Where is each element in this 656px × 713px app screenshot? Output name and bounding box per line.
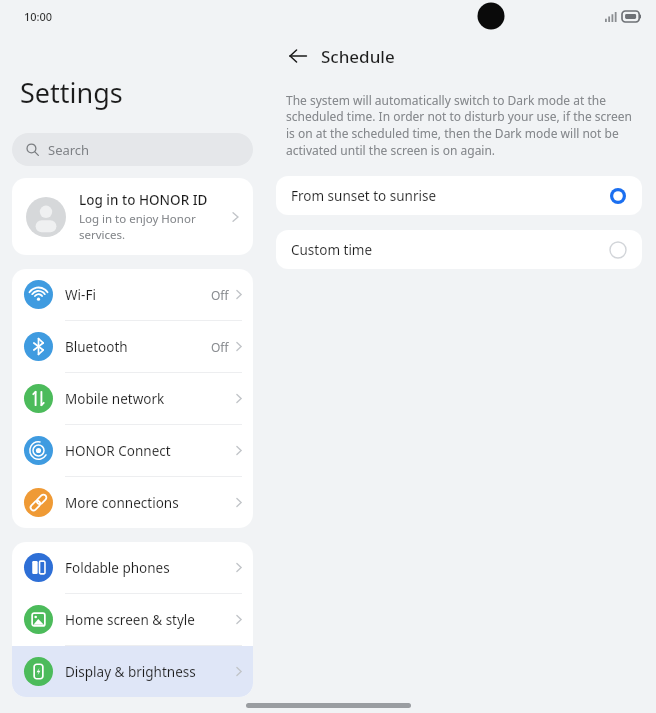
button[interactable]: Bluetooth [12, 321, 253, 372]
staticText: Custom time [291, 241, 609, 259]
button[interactable]: Back [283, 41, 313, 71]
staticText: Settings [20, 74, 123, 111]
staticText: HONOR Connect [65, 442, 236, 460]
button[interactable]: Log in to HONOR ID [12, 178, 253, 255]
staticText: Display & brightness [65, 663, 236, 681]
staticText: Off [211, 339, 229, 355]
staticText: The system will automatically switch to … [286, 92, 632, 158]
staticText: Bluetooth [65, 338, 211, 356]
staticText: Log in to enjoy Honor services. [79, 211, 196, 242]
staticText: Log in to HONOR ID [79, 191, 208, 209]
button[interactable]: From sunset to sunrise [276, 176, 642, 215]
button[interactable]: Display & brightness [12, 646, 253, 697]
staticText: Mobile network [65, 390, 236, 408]
staticText: Wi-Fi [65, 286, 211, 304]
staticText: From sunset to sunrise [291, 187, 609, 205]
button[interactable]: Search [12, 133, 253, 166]
button[interactable]: Mobile network [12, 373, 253, 424]
staticText: Foldable phones [65, 559, 236, 577]
staticText: Schedule [321, 45, 395, 68]
button[interactable]: More connections [12, 477, 253, 528]
staticText: Off [211, 287, 229, 303]
staticText: 10:00 [24, 9, 53, 24]
staticText: More connections [65, 494, 236, 512]
staticText: Home screen & style [65, 611, 236, 629]
button[interactable]: Home screen & style [12, 594, 253, 645]
button[interactable]: Wi-Fi [12, 269, 253, 320]
staticText: Search [48, 141, 90, 159]
button[interactable]: Custom time [276, 230, 642, 269]
button[interactable]: HONOR Connect [12, 425, 253, 476]
button[interactable]: Foldable phones [12, 542, 253, 593]
